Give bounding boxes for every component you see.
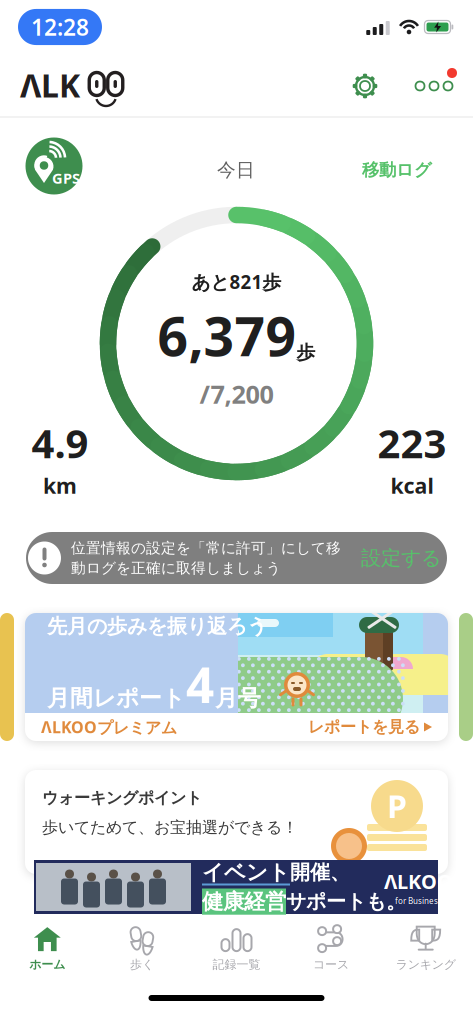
- staticText: レポートを見る: [308, 717, 420, 737]
- staticText: /7,200: [199, 377, 273, 411]
- staticText: 月号: [215, 684, 261, 712]
- button[interactable]: コース: [284, 915, 378, 975]
- staticText: 動ログを正確に取得しましょう: [71, 559, 281, 577]
- button[interactable]: Settings: [343, 64, 387, 108]
- button[interactable]: GPS: [25, 137, 82, 194]
- staticText: 歩: [296, 341, 315, 364]
- staticText: ランキング: [396, 957, 456, 972]
- button[interactable]: 記録一覧: [189, 915, 284, 975]
- staticText: 4.9: [31, 416, 88, 469]
- staticText: 6,379: [157, 300, 296, 371]
- button[interactable]: ホーム: [0, 915, 95, 975]
- staticText: 開催、: [290, 860, 350, 885]
- button[interactable]: Advertisement: [34, 860, 438, 914]
- staticText: サポートも。: [286, 889, 406, 914]
- staticText: km: [43, 471, 77, 500]
- staticText: 歩く: [130, 957, 154, 972]
- staticText: あと821歩: [191, 269, 281, 294]
- staticText: for Business: [395, 895, 442, 906]
- staticText: GPS: [52, 168, 80, 188]
- staticText: ΛLKOO: [384, 868, 453, 894]
- button[interactable]: 先月の歩みを振り返ろう: [25, 613, 448, 741]
- staticText: 歩いてためて、お宝抽選ができる！: [42, 818, 298, 837]
- staticText: 移動ログ: [362, 159, 432, 181]
- staticText: イベント: [202, 859, 290, 885]
- button[interactable]: 位置情報の設定を「常に許可」にして移: [26, 532, 447, 584]
- staticText: 12:28: [31, 12, 89, 42]
- button[interactable]: More options: [409, 64, 459, 108]
- staticText: 今日: [217, 158, 255, 181]
- button[interactable]: ランキング: [378, 915, 473, 975]
- staticText: 記録一覧: [212, 957, 260, 972]
- staticText: 223: [377, 416, 446, 469]
- staticText: ΛLKOOプレミアム: [41, 716, 177, 738]
- staticText: 健康経営: [202, 888, 286, 915]
- staticText: ウォーキングポイント: [42, 788, 202, 808]
- button[interactable]: P: [25, 770, 448, 874]
- button[interactable]: 歩く: [95, 915, 189, 975]
- staticText: kcal: [390, 471, 433, 500]
- staticText: P: [387, 785, 407, 827]
- staticText: 4: [186, 651, 214, 717]
- staticText: コース: [313, 957, 349, 972]
- staticText: 先月の歩みを振り返ろう: [47, 614, 267, 639]
- staticText: 月間レポート: [47, 684, 185, 712]
- staticText: ΛLK: [20, 64, 80, 106]
- button[interactable]: 移動ログ: [354, 151, 440, 189]
- staticText: ホーム: [29, 957, 65, 972]
- staticText: 位置情報の設定を「常に許可」にして移: [71, 539, 341, 557]
- staticText: 設定する: [361, 546, 441, 570]
